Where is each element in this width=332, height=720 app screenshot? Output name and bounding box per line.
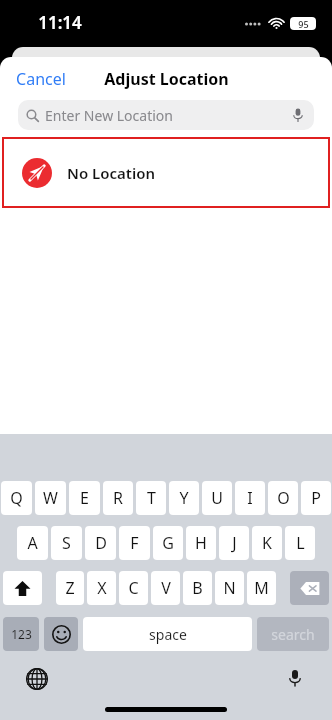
staticText: X — [97, 577, 107, 599]
button[interactable]: L — [285, 526, 315, 560]
button[interactable]: J — [219, 526, 249, 560]
button[interactable]: W — [35, 481, 66, 515]
staticText: E — [80, 487, 89, 509]
button[interactable]: Q — [1, 481, 32, 515]
staticText: C — [128, 577, 139, 599]
button[interactable]: Delete — [290, 571, 329, 605]
staticText: K — [262, 532, 272, 554]
staticText: space — [149, 625, 187, 644]
staticText: 123 — [11, 626, 32, 642]
button[interactable]: C — [119, 571, 148, 605]
staticText: 95 — [298, 18, 309, 30]
button[interactable]: V — [151, 571, 180, 605]
button[interactable]: P — [301, 481, 331, 515]
button[interactable]: Enter New Location — [18, 100, 314, 130]
staticText: 11:14 — [38, 11, 82, 34]
button[interactable]: No Location — [5, 140, 327, 205]
staticText: H — [195, 532, 207, 554]
staticText: R — [113, 487, 123, 509]
button[interactable]: B — [183, 571, 212, 605]
staticText: V — [161, 577, 171, 599]
staticText: B — [192, 577, 203, 599]
button[interactable]: Emoji — [44, 617, 78, 651]
staticText: L — [296, 532, 305, 554]
button[interactable]: Change keyboard language — [26, 668, 48, 690]
button[interactable]: Cancel — [0, 62, 76, 96]
button[interactable]: R — [103, 481, 133, 515]
staticText: Adjust Location — [104, 68, 229, 90]
staticText: Y — [179, 487, 189, 509]
staticText: Cancel — [16, 68, 66, 90]
button[interactable]: Shift — [3, 571, 42, 605]
staticText: I — [247, 487, 253, 509]
button[interactable]: Voice input — [290, 107, 306, 123]
button[interactable]: D — [85, 526, 116, 560]
staticText: P — [311, 487, 321, 509]
staticText: Z — [65, 577, 75, 599]
button[interactable]: O — [268, 481, 298, 515]
staticText: G — [162, 532, 174, 554]
staticText: T — [147, 487, 156, 509]
button[interactable]: Dictation — [285, 668, 305, 688]
button[interactable]: Y — [169, 481, 199, 515]
staticText: O — [277, 487, 290, 509]
staticText: Enter New Location — [45, 106, 173, 125]
button[interactable]: G — [153, 526, 183, 560]
button[interactable]: K — [252, 526, 282, 560]
staticText: N — [223, 577, 236, 599]
button[interactable]: Z — [56, 571, 84, 605]
staticText: W — [43, 487, 58, 509]
button[interactable]: I — [235, 481, 265, 515]
button[interactable]: search — [257, 617, 329, 651]
button[interactable]: 123 — [3, 617, 39, 651]
staticText: M — [254, 577, 269, 599]
button[interactable]: space — [83, 617, 252, 651]
button[interactable]: T — [136, 481, 166, 515]
staticText: F — [130, 532, 139, 554]
staticText: J — [232, 532, 237, 554]
staticText: A — [27, 532, 38, 554]
button[interactable]: S — [51, 526, 82, 560]
button[interactable]: U — [202, 481, 232, 515]
button[interactable]: N — [215, 571, 244, 605]
button[interactable]: X — [87, 571, 116, 605]
staticText: D — [95, 532, 107, 554]
staticText: Q — [10, 487, 23, 509]
staticText: U — [211, 487, 223, 509]
staticText: No Location — [67, 163, 155, 183]
button[interactable]: M — [247, 571, 276, 605]
button[interactable]: A — [17, 526, 48, 560]
button[interactable]: H — [186, 526, 216, 560]
staticText: search — [271, 625, 315, 644]
button[interactable]: F — [119, 526, 150, 560]
button[interactable]: E — [69, 481, 100, 515]
staticText: S — [62, 532, 71, 554]
